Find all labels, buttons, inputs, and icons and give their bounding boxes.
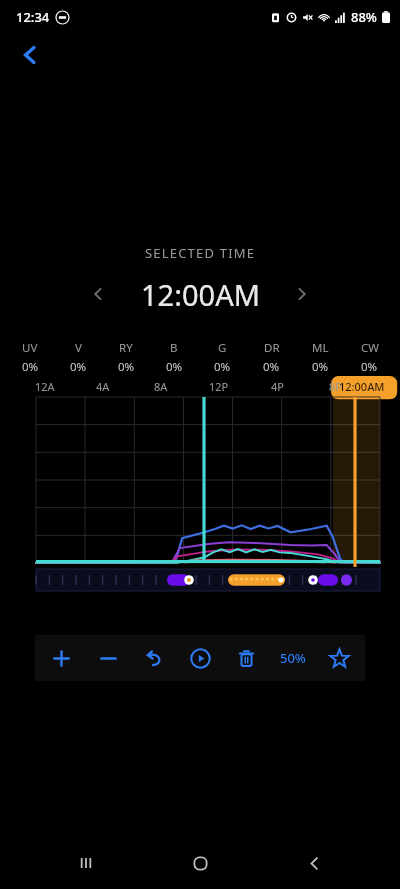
staticText: 12A <box>35 379 55 394</box>
button[interactable]: Home <box>172 837 228 889</box>
button[interactable]: RY <box>102 340 150 375</box>
staticText: 88% <box>351 8 377 26</box>
staticText: 0% <box>214 359 231 375</box>
staticText: RY <box>119 340 133 356</box>
button[interactable]: Add <box>41 635 81 681</box>
staticText: 0% <box>70 359 87 375</box>
button[interactable]: Previous time <box>76 272 120 316</box>
button[interactable]: Favorite <box>319 635 359 681</box>
button[interactable]: Back <box>8 34 52 76</box>
button[interactable]: Remove <box>88 635 128 681</box>
button[interactable]: B <box>150 340 198 375</box>
staticText: 12:00AM <box>339 379 385 394</box>
button[interactable]: ML <box>296 340 345 375</box>
button[interactable]: V <box>54 340 102 375</box>
staticText: DR <box>264 340 280 356</box>
button[interactable]: CW <box>345 340 394 375</box>
button[interactable]: Recents <box>58 837 114 889</box>
staticText: B <box>170 340 178 356</box>
button[interactable]: G <box>198 340 247 375</box>
staticText: 8A <box>154 379 168 394</box>
staticText: 0% <box>166 359 183 375</box>
staticText: 12:34 <box>16 8 50 26</box>
button[interactable]: UV <box>6 340 54 375</box>
button[interactable]: Undo <box>134 635 174 681</box>
button[interactable]: DR <box>247 340 296 375</box>
staticText: UV <box>22 340 38 356</box>
button[interactable]: Delete <box>226 635 266 681</box>
staticText: ML <box>312 340 329 356</box>
staticText: 12P <box>209 379 229 394</box>
staticText: 0% <box>361 359 378 375</box>
button[interactable]: Next time <box>280 272 324 316</box>
button[interactable]: Back <box>286 837 342 889</box>
button[interactable]: Play <box>180 635 220 681</box>
staticText: 0% <box>263 359 280 375</box>
staticText: 50% <box>280 649 306 667</box>
staticText: V <box>75 340 82 356</box>
staticText: G <box>218 340 227 356</box>
staticText: 0% <box>22 359 39 375</box>
staticText: 4P <box>271 379 284 394</box>
button[interactable]: 12:00AM <box>120 275 280 314</box>
staticText: 12:00AM <box>141 275 260 314</box>
staticText: 0% <box>312 359 329 375</box>
button[interactable] <box>0 569 400 591</box>
staticText: CW <box>361 340 379 356</box>
staticText: SELECTED TIME <box>145 244 256 262</box>
staticText: 4A <box>96 379 110 394</box>
button[interactable]: 50% <box>273 635 313 681</box>
staticText: 0% <box>118 359 135 375</box>
staticText: 8P <box>329 379 342 394</box>
